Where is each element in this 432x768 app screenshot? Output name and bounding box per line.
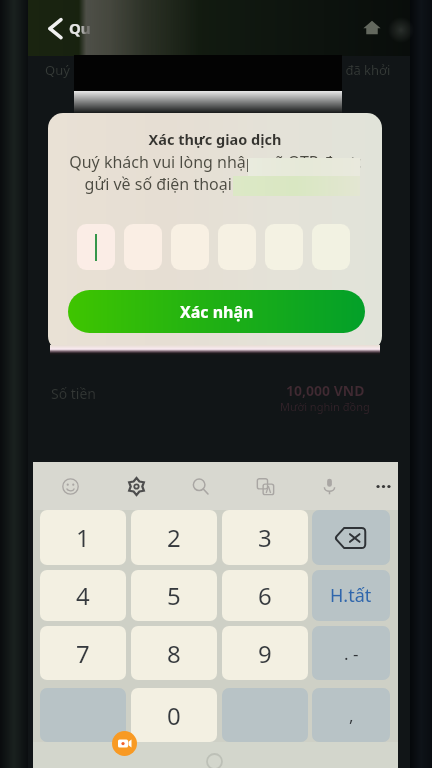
button[interactable]: Xác nhận: [68, 290, 365, 333]
staticText: Xác nhận: [180, 301, 254, 323]
button[interactable]: 5: [131, 570, 217, 621]
button[interactable]: 3: [222, 510, 308, 565]
button[interactable]: 4: [40, 570, 126, 621]
staticText: 5: [167, 579, 181, 612]
button[interactable]: [124, 224, 162, 270]
button[interactable]: 8: [131, 626, 217, 680]
staticText: Qu: [69, 18, 91, 38]
button[interactable]: . -: [312, 626, 390, 680]
button[interactable]: Backspace: [312, 510, 390, 565]
button[interactable]: Symbols: [40, 688, 126, 742]
staticText: 4: [76, 579, 90, 612]
button[interactable]: 6: [222, 570, 308, 621]
staticText: Số tiền: [51, 384, 97, 403]
staticText: 10,000 VND: [286, 381, 365, 400]
button[interactable]: 0: [131, 688, 217, 742]
button[interactable]: Voice input: [308, 465, 350, 507]
button[interactable]: 7: [40, 626, 126, 680]
staticText: Quý khách vui lòng nhập mã OTP được gửi …: [50, 151, 380, 195]
staticText: ,: [349, 704, 354, 727]
staticText: 2: [167, 521, 181, 554]
staticText: Xác thực giao dịch: [48, 129, 382, 149]
staticText: 6: [258, 579, 272, 612]
button[interactable]: More options: [362, 465, 404, 507]
staticText: . -: [344, 642, 359, 665]
staticText: Quý: [45, 61, 70, 79]
button[interactable]: H.tất: [312, 570, 390, 621]
button[interactable]: [77, 224, 115, 270]
button[interactable]: Search: [179, 465, 221, 507]
button[interactable]: Back: [35, 12, 67, 44]
staticText: 3: [258, 521, 272, 554]
staticText: 1: [76, 521, 90, 554]
staticText: Mười nghìn đồng: [280, 399, 370, 414]
button[interactable]: Home: [360, 15, 384, 39]
button[interactable]: Translate: [244, 465, 286, 507]
button[interactable]: Emoji: [49, 465, 91, 507]
staticText: H.tất: [330, 583, 372, 608]
button[interactable]: [265, 224, 303, 270]
button[interactable]: [218, 224, 256, 270]
button[interactable]: 2: [131, 510, 217, 565]
button[interactable]: Settings: [115, 465, 157, 507]
staticText: 7: [76, 637, 90, 670]
button[interactable]: 9: [222, 626, 308, 680]
button[interactable]: 1: [40, 510, 126, 565]
staticText: 8: [167, 637, 181, 670]
staticText: 9: [258, 637, 272, 670]
button[interactable]: [171, 224, 209, 270]
button[interactable]: ,: [312, 688, 390, 742]
staticText: 0: [167, 699, 181, 732]
staticText: h đã khởi: [334, 61, 391, 79]
